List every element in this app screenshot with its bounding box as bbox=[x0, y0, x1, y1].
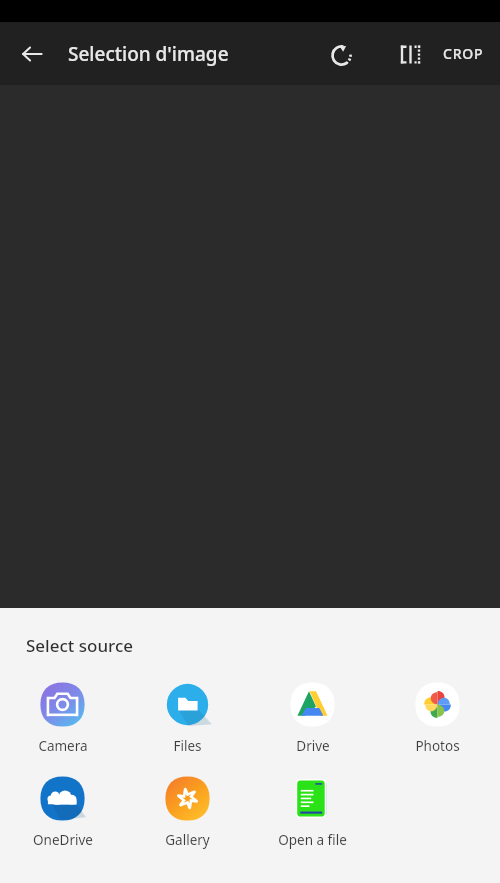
staticText: Camera bbox=[38, 737, 88, 755]
staticText: CROP bbox=[443, 44, 484, 63]
staticText: Selection d'image bbox=[68, 41, 229, 67]
button[interactable]: Camera bbox=[0, 677, 125, 759]
staticText: Files bbox=[173, 737, 202, 755]
button[interactable]: Gallery bbox=[125, 771, 250, 853]
staticText: Drive bbox=[296, 737, 330, 755]
button[interactable]: CROP bbox=[433, 34, 494, 73]
button[interactable]: Files bbox=[125, 677, 250, 759]
button[interactable]: Back bbox=[8, 30, 56, 78]
staticText: Open a file bbox=[278, 831, 347, 849]
button[interactable]: Open a file bbox=[250, 771, 375, 853]
button[interactable]: Rotate bbox=[319, 31, 365, 77]
button[interactable]: OneDrive bbox=[0, 771, 125, 853]
button[interactable]: Flip bbox=[387, 31, 433, 77]
staticText: Photos bbox=[415, 737, 460, 755]
staticText: Select source bbox=[26, 634, 133, 657]
button[interactable]: Drive bbox=[250, 677, 375, 759]
staticText: Gallery bbox=[165, 831, 210, 849]
button[interactable]: Photos bbox=[375, 677, 500, 759]
staticText: OneDrive bbox=[33, 831, 93, 849]
